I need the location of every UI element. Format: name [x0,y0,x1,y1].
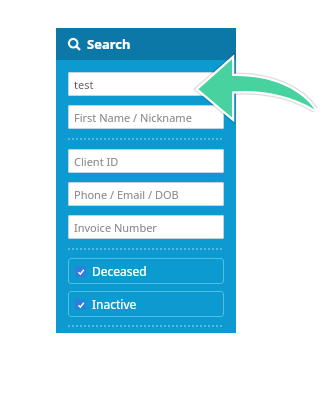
staticText: Deceased [92,263,147,279]
button[interactable]: Invoice Number [68,215,224,239]
button[interactable]: test [68,72,224,96]
button[interactable]: Client ID [68,149,224,173]
staticText: Search [87,35,131,53]
other: Pointer arrow [196,58,316,118]
button[interactable]: Phone / Email / DOB [68,182,224,206]
button[interactable]: Search [56,28,236,60]
staticText: test [74,77,94,92]
staticText: First Name / Nickname [74,110,192,125]
button[interactable]: Inactive [68,291,224,317]
button[interactable]: Deceased [68,258,224,284]
button[interactable]: First Name / Nickname [68,105,224,129]
staticText: Invoice Number [74,220,157,235]
staticText: Client ID [74,154,119,169]
staticText: Inactive [92,296,137,312]
staticText: Phone / Email / DOB [74,187,179,202]
